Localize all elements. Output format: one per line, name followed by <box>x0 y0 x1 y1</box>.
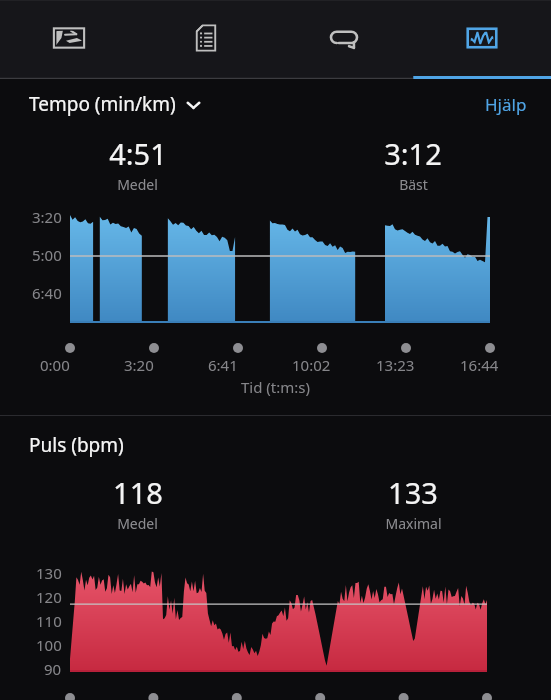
staticText: Medel <box>117 514 158 533</box>
staticText: 4:51 <box>109 134 167 173</box>
button[interactable]: Hjälp <box>483 89 529 120</box>
staticText: 6:41 <box>208 355 238 375</box>
button[interactable]: Map <box>0 0 137 75</box>
staticText: 3:20 <box>32 207 62 227</box>
button[interactable]: 3:20 <box>0 203 551 415</box>
staticText: Bäst <box>399 175 428 194</box>
staticText: 10:02 <box>292 355 331 375</box>
staticText: Maximal <box>385 514 442 533</box>
staticText: 3:12 <box>384 134 442 173</box>
staticText: 100 <box>36 635 62 655</box>
button[interactable]: Graphs <box>413 0 551 75</box>
staticText: 110 <box>36 611 62 631</box>
staticText: 13:23 <box>376 355 415 375</box>
staticText: 3:20 <box>124 355 154 375</box>
staticText: 90 <box>44 659 62 679</box>
staticText: Hjälp <box>485 93 527 116</box>
staticText: Medel <box>117 175 158 194</box>
staticText: 118 <box>113 473 163 512</box>
staticText: 120 <box>36 587 62 607</box>
staticText: 0:00 <box>40 355 70 375</box>
button[interactable]: Laps <box>275 0 413 75</box>
staticText: 5:00 <box>32 245 62 265</box>
button[interactable]: 130 <box>0 549 551 700</box>
staticText: Tempo (min/km) <box>29 91 176 117</box>
button[interactable]: Tempo (min/km) <box>29 87 202 121</box>
staticText: Tid (t:m:s) <box>241 377 311 397</box>
staticText: 133 <box>388 473 438 512</box>
staticText: 130 <box>36 563 62 583</box>
staticText: 6:40 <box>32 283 62 303</box>
staticText: Puls (bpm) <box>29 432 124 458</box>
staticText: 16:44 <box>460 355 499 375</box>
button[interactable]: Details <box>137 0 275 75</box>
